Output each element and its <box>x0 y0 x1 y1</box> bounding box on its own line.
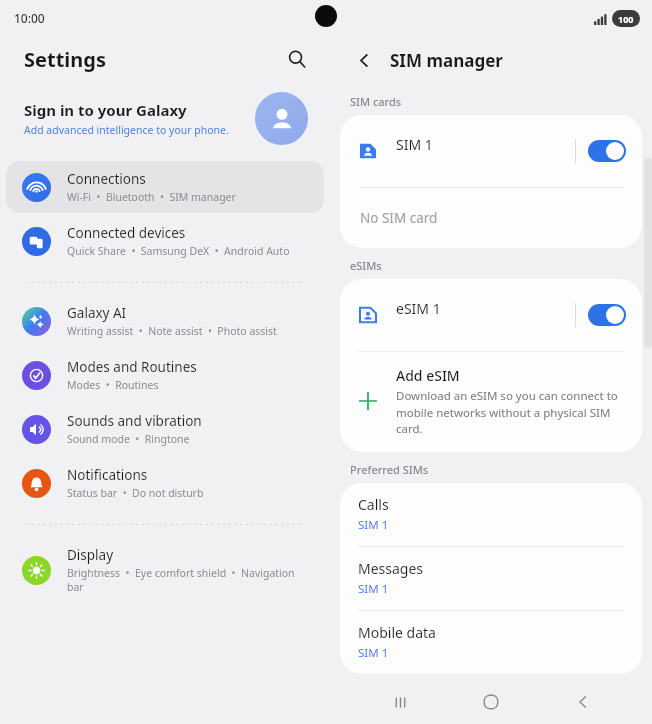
staticText: Connected devices <box>67 224 186 242</box>
staticText: Writing assist • Note assist • Photo ass… <box>67 324 277 338</box>
staticText: SIM 1 <box>396 135 575 154</box>
button[interactable]: eSIM 1 <box>340 279 642 351</box>
staticText: Messages <box>358 559 424 578</box>
button[interactable]: SIM 1 <box>340 115 642 187</box>
staticText: Mobile data <box>358 623 436 642</box>
staticText: SIM 1 <box>358 645 389 661</box>
staticText: Notifications <box>67 466 148 484</box>
button[interactable]: Sign in to your Galaxy <box>0 82 330 154</box>
staticText: Preferred SIMs <box>350 462 429 477</box>
staticText: Galaxy AI <box>67 304 127 322</box>
staticText: Quick Share • Samsung DeX • Android Auto <box>67 244 290 258</box>
button[interactable]: Modes and Routines <box>6 349 324 401</box>
button[interactable]: Recent apps <box>378 680 422 724</box>
staticText: eSIM 1 <box>396 299 575 318</box>
staticText: Display <box>67 546 114 564</box>
button[interactable]: Back <box>348 44 380 76</box>
button[interactable]: Back <box>561 680 605 724</box>
staticText: Modes • Routines <box>67 378 159 392</box>
button[interactable]: Toggle eSIM 1 <box>588 304 626 326</box>
button[interactable]: Galaxy AI <box>6 295 324 347</box>
button[interactable]: Messages <box>340 547 642 610</box>
button[interactable]: Sounds and vibration <box>6 403 324 455</box>
button[interactable]: Calls <box>340 483 642 546</box>
staticText: Calls <box>358 495 389 514</box>
button[interactable]: No SIM card <box>340 188 642 248</box>
button[interactable]: Notifications <box>6 457 324 509</box>
staticText: Connections <box>67 170 146 188</box>
staticText: SIM cards <box>350 94 402 109</box>
button[interactable]: Home <box>469 680 513 724</box>
staticText: Status bar • Do not disturb <box>67 486 204 500</box>
staticText: Add advanced intelligence to your phone. <box>24 123 229 137</box>
staticText: Sounds and vibration <box>67 412 202 430</box>
staticText: Sign in to your Galaxy <box>24 100 187 120</box>
button[interactable]: Toggle SIM 1 <box>588 140 626 162</box>
button[interactable]: Connections <box>6 161 324 213</box>
staticText: No SIM card <box>360 209 438 227</box>
staticText: Modes and Routines <box>67 358 197 376</box>
staticText: Settings <box>24 46 106 73</box>
staticText: Download an eSIM so you can connect to m… <box>396 388 626 436</box>
staticText: 10:00 <box>14 10 45 26</box>
button[interactable]: Add eSIM <box>340 352 642 452</box>
staticText: Sound mode • Ringtone <box>67 432 190 446</box>
staticText: Add eSIM <box>396 366 460 385</box>
staticText: Brightness • Eye comfort shield • Naviga… <box>67 566 312 594</box>
button[interactable]: Display <box>6 537 324 603</box>
button[interactable]: Search settings <box>280 42 314 76</box>
staticText: SIM 1 <box>358 581 389 597</box>
staticText: Wi-Fi • Bluetooth • SIM manager <box>67 190 236 204</box>
button[interactable]: Mobile data <box>340 611 642 674</box>
staticText: SIM 1 <box>358 517 389 533</box>
staticText: eSIMs <box>350 258 382 273</box>
staticText: 100 <box>618 13 634 25</box>
staticText: SIM manager <box>390 49 503 72</box>
button[interactable]: Connected devices <box>6 215 324 267</box>
